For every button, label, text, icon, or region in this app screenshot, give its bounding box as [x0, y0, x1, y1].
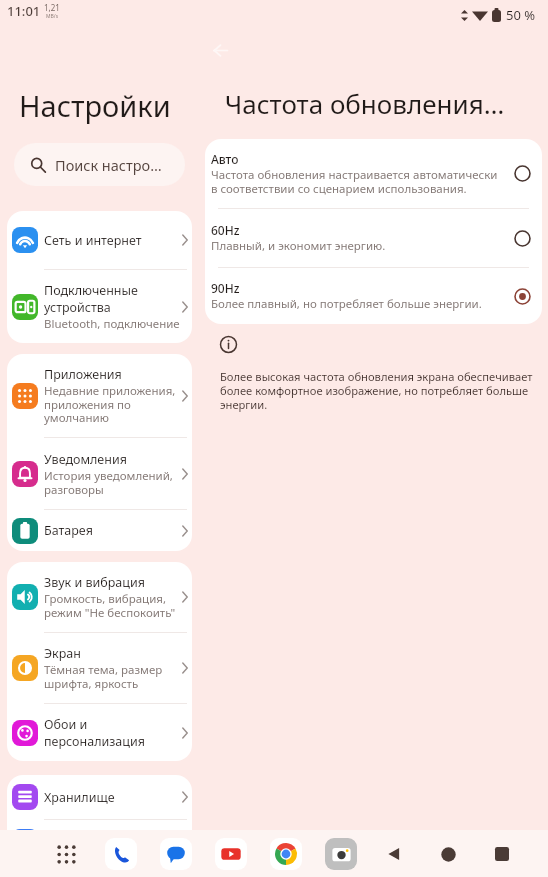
button[interactable]: Обои и персонализация	[7, 704, 192, 761]
staticText: 90Hz	[211, 280, 240, 296]
button[interactable]: Батарея	[7, 510, 192, 551]
button[interactable]: 60Hz	[205, 209, 542, 267]
staticText: Хранилище	[44, 789, 115, 806]
button[interactable]: Авто	[205, 139, 542, 208]
staticText: 11:01	[7, 2, 41, 20]
button[interactable]: Сообщения	[159, 837, 193, 871]
button[interactable]: 90Hz	[205, 268, 542, 324]
button[interactable]: Звук и вибрация	[7, 562, 192, 632]
staticText: Более плавный, но потребляет больше энер…	[211, 296, 482, 312]
button[interactable]: Приложения	[7, 354, 192, 437]
button[interactable]: Недавние приложения	[485, 837, 519, 871]
staticText: Сеть и интернет	[44, 232, 142, 249]
staticText: Недавние приложения, приложения по умолч…	[44, 383, 182, 425]
button[interactable]: Хранилище	[7, 775, 192, 819]
button[interactable]: Уведомления	[7, 438, 192, 509]
button[interactable]: Конфиденциальность	[7, 820, 192, 830]
staticText: 1,21	[44, 2, 60, 13]
staticText: Настройки	[19, 86, 171, 125]
staticText: Bluetooth, подключение	[44, 316, 180, 332]
staticText: Подключенные устройства	[44, 282, 182, 316]
staticText: MB/s	[46, 13, 59, 20]
button[interactable]: Телефон	[104, 837, 138, 871]
staticText: Тёмная тема, размер шрифта, яркость	[44, 662, 182, 691]
staticText: Плавный, и экономит энергию.	[211, 238, 386, 254]
button[interactable]: Все приложения	[49, 837, 83, 871]
staticText: Более высокая частота обновления экрана …	[220, 369, 544, 413]
staticText: 50 %	[506, 6, 536, 24]
button[interactable]: YouTube	[214, 837, 248, 871]
staticText: 60Hz	[211, 222, 240, 238]
staticText: Авто	[211, 151, 239, 167]
staticText: Частота обновления настраивается автомат…	[211, 167, 506, 196]
staticText: Приложения	[44, 366, 122, 383]
staticText: Громкость, вибрация, режим "Не беспокоит…	[44, 591, 182, 620]
button[interactable]: Экран	[7, 633, 192, 703]
button[interactable]: Сеть и интернет	[7, 211, 192, 269]
button[interactable]: Подключенные устройства	[7, 270, 192, 343]
staticText: История уведомлений, разговоры	[44, 468, 182, 497]
staticText: Уведомления	[44, 451, 127, 468]
staticText: Частота обновления…	[199, 86, 530, 121]
button[interactable]: Назад	[377, 837, 411, 871]
staticText: Звук и вибрация	[44, 574, 145, 591]
button[interactable]: Chrome	[269, 837, 303, 871]
staticText: Экран	[44, 645, 81, 662]
button[interactable]: Поиск настро…	[14, 143, 185, 186]
staticText: Обои и персонализация	[44, 716, 182, 750]
button[interactable]: Главный экран	[431, 837, 465, 871]
staticText: Батарея	[44, 522, 93, 539]
staticText: Поиск настро…	[55, 155, 162, 175]
button[interactable]: Камера	[324, 837, 358, 871]
